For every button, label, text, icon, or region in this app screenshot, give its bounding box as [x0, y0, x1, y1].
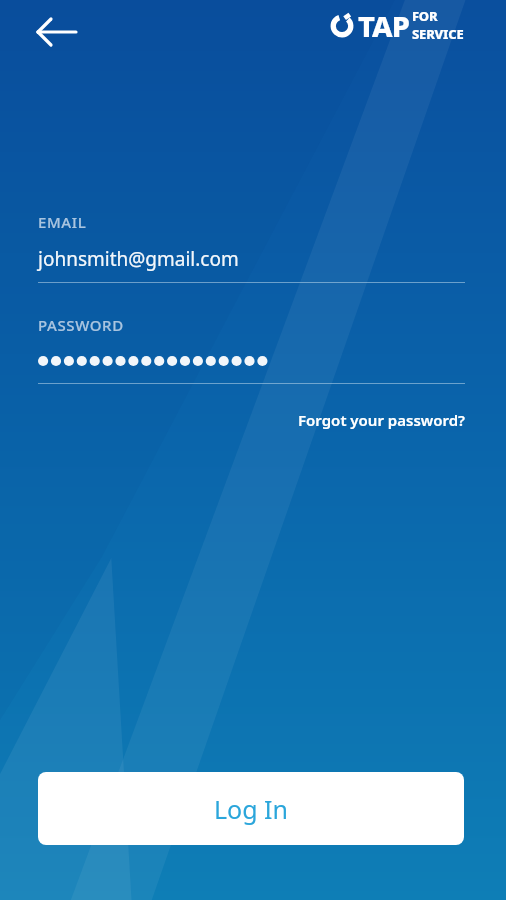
button[interactable]: Log In	[38, 772, 464, 845]
button[interactable]: EMAIL	[38, 212, 465, 283]
button[interactable]: TAP	[329, 6, 464, 45]
staticText: TAP	[358, 6, 410, 45]
staticText: Forgot your password?	[298, 410, 465, 430]
staticText: EMAIL	[38, 212, 87, 232]
staticText: SERVICE	[412, 25, 464, 43]
staticText: johnsmith@gmail.com	[38, 246, 239, 272]
staticText: PASSWORD	[38, 315, 124, 335]
button[interactable]: Back	[30, 8, 84, 54]
staticText: Log In	[214, 792, 289, 826]
button[interactable]: PASSWORD	[38, 315, 465, 384]
staticText: FOR	[412, 7, 438, 25]
button[interactable]: Forgot your password?	[298, 406, 465, 434]
